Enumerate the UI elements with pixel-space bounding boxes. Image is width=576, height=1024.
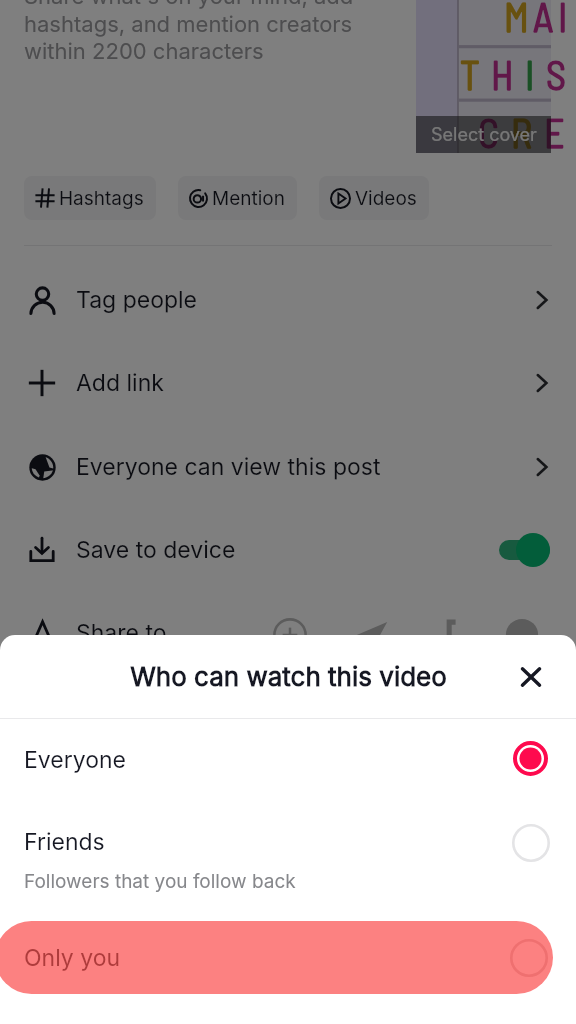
button[interactable]: Everyone can view this post — [0, 433, 576, 501]
staticText: R — [511, 108, 533, 156]
staticText: Everyone can view this post — [76, 453, 381, 481]
staticText: H — [491, 50, 514, 98]
button[interactable]: Save to device toggle — [499, 533, 550, 567]
button[interactable]: Share target — [349, 612, 395, 658]
staticText: C — [478, 108, 500, 156]
staticText: Share to — [76, 619, 167, 647]
button[interactable]: Everyone — [0, 720, 576, 800]
staticText: Who can watch this video — [130, 661, 447, 692]
button[interactable]: Save to device — [0, 516, 576, 584]
button[interactable]: Close — [514, 660, 548, 694]
staticText: Followers that you follow back — [24, 870, 296, 893]
button[interactable]: Mention — [178, 176, 297, 220]
button[interactable]: Hashtags — [24, 176, 156, 220]
button[interactable]: Only you — [0, 916, 576, 1000]
button[interactable]: Share target — [267, 612, 313, 658]
staticText: M — [504, 0, 529, 40]
staticText: Mention — [212, 187, 285, 210]
staticText: I — [558, 0, 568, 40]
button[interactable]: Videos — [319, 176, 429, 220]
staticText: Everyone — [24, 746, 126, 774]
staticText: Save to device — [76, 536, 236, 564]
staticText: Videos — [355, 187, 417, 210]
button[interactable]: Share to — [0, 599, 576, 667]
button[interactable]: Friends — [0, 798, 576, 916]
staticText: Share what's on your mind, add hashtags,… — [24, 0, 354, 64]
button[interactable]: Select cover — [416, 0, 551, 153]
staticText: Hashtags — [59, 187, 144, 210]
staticText: Select cover — [431, 124, 537, 146]
staticText: A — [533, 0, 554, 40]
staticText: Friends — [24, 828, 105, 856]
staticText: E — [544, 108, 565, 156]
staticText: Only you — [24, 944, 121, 972]
staticText: T — [460, 50, 480, 98]
staticText: S — [546, 50, 566, 98]
button[interactable]: Share target — [428, 612, 474, 658]
button[interactable]: Share target — [499, 612, 545, 658]
button[interactable]: Add link — [0, 349, 576, 417]
staticText: Tag people — [76, 286, 197, 314]
staticText: I — [525, 50, 535, 98]
staticText: Add link — [76, 369, 164, 397]
button[interactable]: Tag people — [0, 266, 576, 334]
